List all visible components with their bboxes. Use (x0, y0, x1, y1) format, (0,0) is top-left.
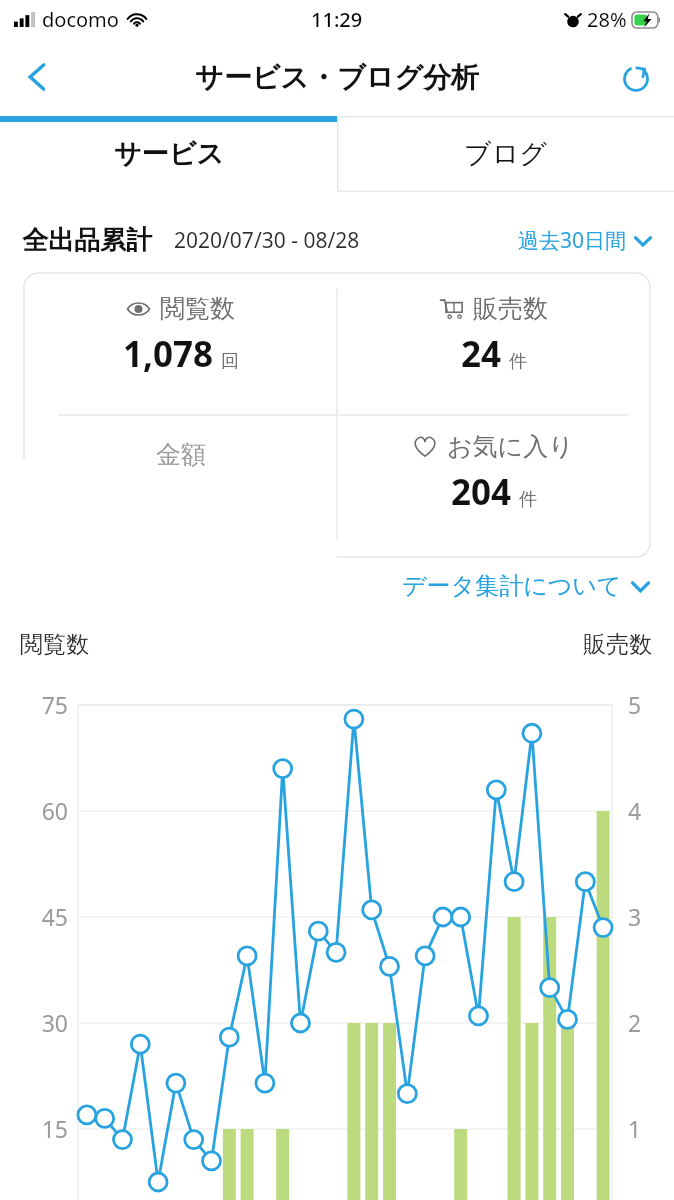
staticText: 30 (8, 1007, 68, 1038)
staticText: 1 (628, 1113, 674, 1144)
staticText: 件 (519, 488, 537, 511)
button[interactable]: 過去30日間 (518, 226, 652, 255)
staticText: 販売数 (473, 293, 548, 324)
staticText: 回 (221, 350, 239, 373)
staticText: docomo (42, 6, 119, 33)
button[interactable]: Refresh (606, 47, 666, 107)
staticText: サービス・ブログ分析 (195, 60, 479, 95)
staticText: 28% (587, 6, 627, 33)
staticText: 5 (628, 689, 674, 720)
staticText: 販売数 (583, 630, 652, 659)
staticText: サービス (114, 137, 224, 171)
staticText: 閲覧数 (160, 293, 235, 324)
staticText: 45 (8, 901, 68, 932)
staticText: 11:29 (311, 6, 363, 33)
button[interactable]: サービス (0, 116, 337, 192)
staticText: 3 (628, 901, 674, 932)
button[interactable]: データ集計について (402, 571, 650, 601)
staticText: 4 (628, 795, 674, 826)
staticText: 過去30日間 (518, 226, 627, 255)
staticText: 75 (8, 689, 68, 720)
staticText: 2020/07/30 - 08/28 (174, 226, 360, 255)
staticText: 閲覧数 (20, 630, 89, 659)
staticText: 2 (628, 1007, 674, 1038)
button[interactable]: ブログ (337, 116, 674, 192)
staticText: ブログ (464, 137, 547, 171)
staticText: 24 (461, 330, 502, 378)
staticText: 204 (451, 468, 512, 516)
staticText: 60 (8, 795, 68, 826)
staticText: 15 (8, 1113, 68, 1144)
staticText: 1,078 (123, 330, 214, 378)
staticText: 件 (509, 350, 527, 373)
staticText: 金額 (156, 439, 206, 470)
button[interactable]: Back (8, 47, 68, 107)
staticText: 全出品累計 (22, 224, 152, 257)
staticText: お気に入り (447, 431, 574, 462)
staticText: データ集計について (402, 571, 622, 601)
